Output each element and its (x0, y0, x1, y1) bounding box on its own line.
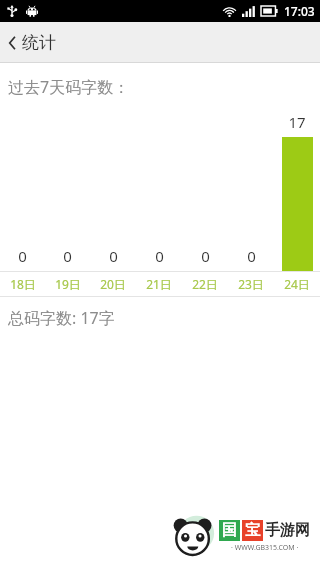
staticText: 18日 (10, 276, 36, 292)
staticText: 23日 (238, 276, 264, 292)
staticText: 20日 (100, 276, 126, 292)
staticText: 19日 (55, 276, 81, 292)
staticText: 0 (18, 246, 27, 266)
staticText: 手游网 (265, 521, 310, 540)
staticText: 21日 (146, 276, 172, 292)
staticText: 0 (109, 246, 118, 266)
staticText: 0 (247, 246, 256, 266)
button[interactable]: Back (0, 22, 72, 63)
staticText: 0 (155, 246, 164, 266)
staticText: · WWW.GB315.COM · (231, 543, 299, 553)
staticText: 17 (288, 112, 306, 132)
staticText: 0 (63, 246, 72, 266)
staticText: 17:03 (284, 3, 315, 19)
staticText: 22日 (192, 276, 218, 292)
staticText: 总码字数: 17字 (8, 307, 115, 329)
staticText: 0 (201, 246, 210, 266)
staticText: 24日 (284, 276, 310, 292)
staticText: 宝 (245, 521, 260, 540)
staticText: 统计 (22, 32, 56, 53)
staticText: 国 (222, 521, 237, 540)
staticText: 过去7天码字数： (8, 76, 130, 98)
